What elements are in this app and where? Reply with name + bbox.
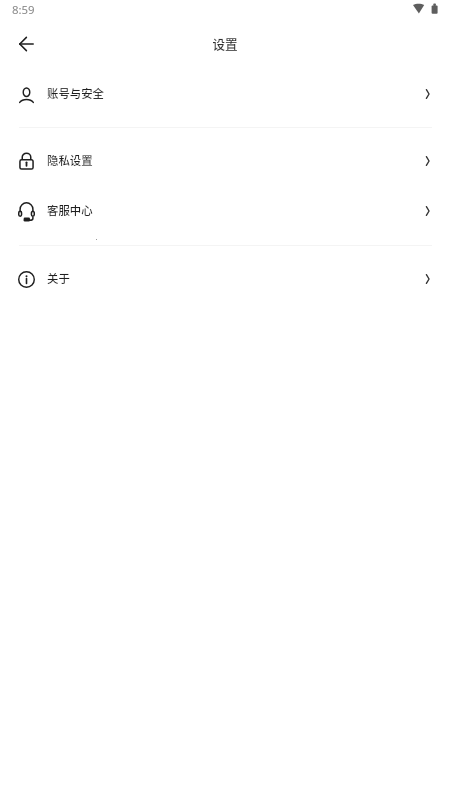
staticText: 关于 [47,270,70,287]
button[interactable]: 账号与安全 [0,69,450,119]
staticText: 隐私设置 [47,152,93,169]
staticText: 客服中心 [47,202,93,219]
button[interactable]: Back [4,22,48,66]
staticText: 8:59 [12,2,35,18]
staticText: 账号与安全 [47,85,104,102]
button[interactable]: 客服中心 [0,186,450,236]
staticText: 设置 [0,34,450,52]
button[interactable]: 关于 [0,254,450,304]
button[interactable]: 隐私设置 [0,136,450,186]
